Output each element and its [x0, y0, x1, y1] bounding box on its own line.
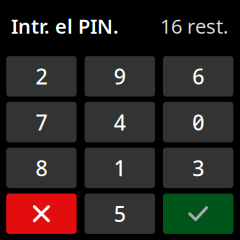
button[interactable]: 6: [163, 56, 233, 96]
button[interactable]: 1: [85, 148, 155, 188]
staticText: 8: [35, 154, 47, 182]
button[interactable]: 7: [6, 102, 77, 142]
button[interactable]: 2: [6, 56, 77, 96]
button[interactable]: Confirm: [163, 193, 233, 234]
staticText: Intr. el PIN.: [11, 13, 119, 39]
staticText: 6: [192, 62, 204, 90]
staticText: 4: [114, 108, 126, 136]
staticText: 2: [35, 62, 47, 90]
button[interactable]: Delete: [6, 193, 77, 234]
button[interactable]: 0: [163, 102, 233, 142]
staticText: 0: [192, 108, 204, 136]
button[interactable]: 9: [85, 56, 155, 96]
staticText: 7: [35, 108, 47, 136]
button[interactable]: 5: [85, 193, 155, 234]
staticText: 5: [114, 199, 126, 228]
button[interactable]: 3: [163, 148, 233, 188]
staticText: 3: [192, 154, 204, 182]
staticText: 9: [114, 62, 126, 90]
button[interactable]: 8: [6, 148, 77, 188]
staticText: 16 rest.: [160, 13, 228, 39]
staticText: 1: [114, 154, 126, 182]
button[interactable]: 4: [85, 102, 155, 142]
